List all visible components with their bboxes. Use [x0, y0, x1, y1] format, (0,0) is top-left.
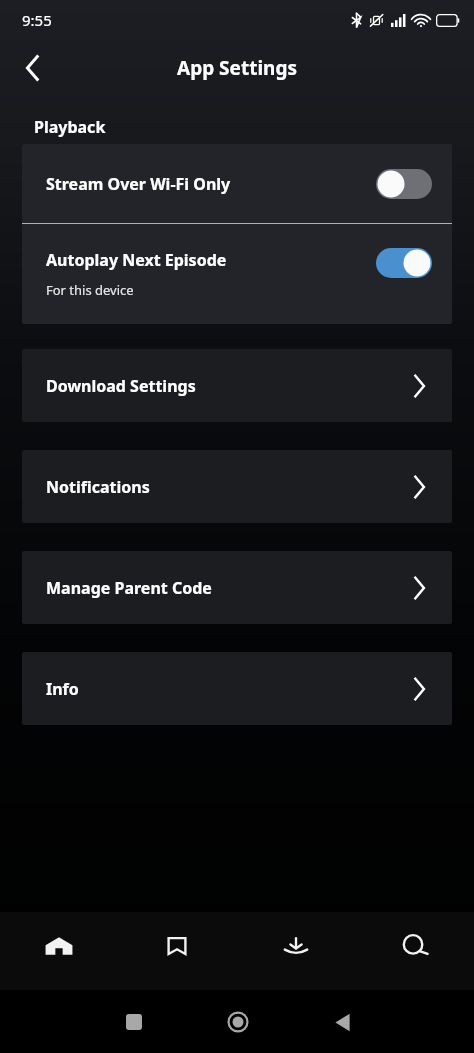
- button[interactable]: Download Settings: [22, 349, 452, 422]
- staticText: Info: [46, 678, 413, 700]
- staticText: App Settings: [177, 55, 297, 81]
- button[interactable]: Back: [316, 996, 368, 1048]
- button[interactable]: Bookmarks: [118, 912, 236, 990]
- staticText: For this device: [46, 281, 134, 299]
- button[interactable]: Info: [22, 652, 452, 725]
- staticText: Download Settings: [46, 375, 413, 397]
- button[interactable]: Home: [0, 912, 118, 990]
- button[interactable]: Home: [212, 996, 264, 1048]
- staticText: Manage Parent Code: [46, 577, 413, 599]
- button[interactable]: Manage Parent Code: [22, 551, 452, 624]
- button[interactable]: Notifications: [22, 450, 452, 523]
- staticText: 9:55: [22, 10, 52, 30]
- button[interactable]: Back: [10, 46, 54, 90]
- button[interactable]: Recents: [108, 996, 160, 1048]
- button[interactable]: Downloads: [236, 912, 355, 990]
- button[interactable]: Search: [355, 912, 474, 990]
- staticText: Playback: [34, 116, 106, 138]
- button[interactable]: Autoplay Next Episode: [22, 224, 452, 324]
- staticText: Stream Over Wi-Fi Only: [46, 173, 376, 195]
- button[interactable]: On: [376, 248, 432, 278]
- staticText: Autoplay Next Episode: [46, 249, 227, 271]
- button[interactable]: Stream Over Wi-Fi Only: [22, 144, 452, 223]
- button[interactable]: Off: [376, 169, 432, 199]
- staticText: Notifications: [46, 476, 413, 498]
